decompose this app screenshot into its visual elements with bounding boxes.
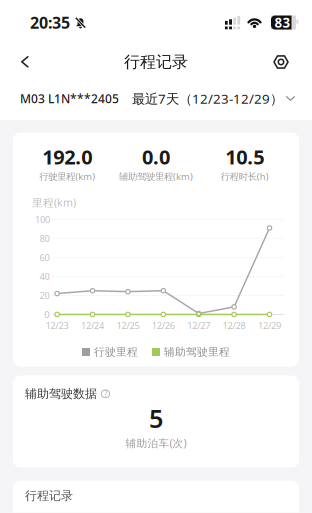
button[interactable]: Back xyxy=(0,48,30,76)
staticText: 100 xyxy=(35,213,50,226)
staticText: 最近7天（12/23-12/29） xyxy=(132,90,283,107)
staticText: 辅助驾驶数据 xyxy=(25,386,97,401)
staticText: ? xyxy=(104,389,107,399)
staticText: 12/23 xyxy=(46,319,69,332)
staticText: 20 xyxy=(40,289,50,302)
staticText: 里程(km) xyxy=(32,195,76,210)
staticText: 5 xyxy=(149,401,163,435)
staticText: 行驶里程 xyxy=(94,345,138,359)
staticText: 12/27 xyxy=(187,319,210,332)
staticText: 12/26 xyxy=(152,319,175,332)
staticText: 0.0 xyxy=(142,143,170,170)
staticText: 行程记录 xyxy=(124,52,188,72)
staticText: 83 xyxy=(274,14,290,31)
staticText: 12/24 xyxy=(81,319,104,332)
button[interactable]: 最近7天（12/23-12/29） xyxy=(132,90,295,107)
button[interactable]: M03 L1N***2405 xyxy=(20,90,119,106)
staticText: 10.5 xyxy=(225,143,264,170)
staticText: M03 L1N***2405 xyxy=(20,90,119,106)
button[interactable]: Settings xyxy=(273,46,312,78)
staticText: 192.0 xyxy=(42,143,92,170)
staticText: 12/25 xyxy=(116,319,139,332)
staticText: 80 xyxy=(40,232,50,245)
staticText: 辅助驾驶里程 xyxy=(164,345,230,359)
staticText: 20:35 xyxy=(30,12,70,33)
staticText: 60 xyxy=(40,251,50,264)
staticText: 0 xyxy=(44,308,49,321)
staticText: 辅助泊车(次) xyxy=(125,436,186,450)
staticText: 12/28 xyxy=(223,319,246,332)
staticText: 辅助驾驶里程(km) xyxy=(119,170,193,182)
staticText: 行程记录 xyxy=(25,488,73,503)
staticText: 40 xyxy=(40,270,50,283)
staticText: 行驶里程(km) xyxy=(39,170,95,182)
staticText: 行程时长(h) xyxy=(221,170,269,182)
staticText: 12/29 xyxy=(258,319,281,332)
button[interactable]: About assisted driving data xyxy=(101,389,110,398)
